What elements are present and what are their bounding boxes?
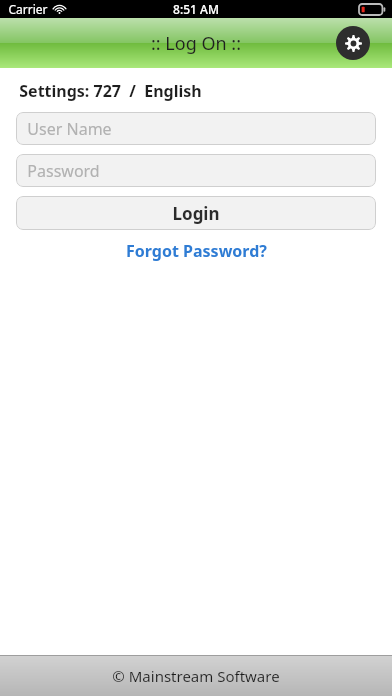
button[interactable]: Settings: [336, 26, 370, 60]
staticText: 8:51 AM: [173, 1, 219, 17]
staticText: User Name: [27, 118, 112, 140]
staticText: :: Log On ::: [151, 31, 241, 56]
staticText: Carrier: [8, 1, 48, 17]
button[interactable]: Password: [16, 154, 376, 187]
staticText: Login: [172, 202, 220, 225]
button[interactable]: Settings: 727 / English: [19, 80, 392, 102]
button[interactable]: Forgot Password?: [114, 238, 279, 264]
staticText: © Mainstream Software: [112, 666, 280, 686]
staticText: Password: [27, 160, 100, 182]
button[interactable]: Login: [16, 196, 376, 230]
staticText: Forgot Password?: [126, 240, 267, 262]
button[interactable]: User Name: [16, 112, 376, 145]
staticText: Settings: 727 / English: [19, 80, 202, 102]
